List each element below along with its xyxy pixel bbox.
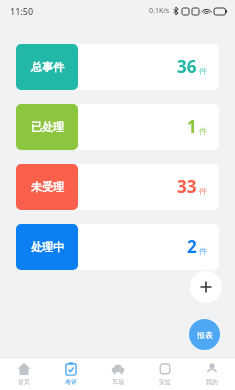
staticText: 已处理 — [31, 120, 64, 134]
staticText: 处理中 — [31, 240, 64, 254]
staticText: 我的 — [206, 378, 218, 386]
staticText: 件 — [199, 126, 207, 136]
button[interactable]: 车场 — [94, 358, 141, 390]
button[interactable] — [16, 104, 219, 150]
button[interactable] — [16, 164, 219, 210]
staticText: 1 — [187, 115, 197, 138]
staticText: 车场 — [112, 378, 124, 386]
staticText: 总事件 — [31, 60, 64, 74]
button[interactable] — [16, 44, 219, 90]
button[interactable]: 安监 — [141, 358, 188, 390]
button[interactable]: Add — [190, 271, 222, 303]
staticText: 报表 — [197, 330, 213, 340]
staticText: 11:50 — [10, 5, 34, 17]
staticText: 2 — [187, 235, 197, 258]
button[interactable]: 首页 — [0, 358, 47, 390]
staticText: 首页 — [18, 378, 30, 386]
staticText: 0.1K/s — [149, 6, 170, 16]
button[interactable]: 我的 — [188, 358, 235, 390]
button[interactable]: 报表 — [189, 319, 220, 350]
staticText: 件 — [199, 66, 207, 76]
staticText: 安监 — [159, 378, 171, 386]
button[interactable] — [16, 224, 219, 270]
staticText: 未受理 — [31, 180, 64, 194]
staticText: 36 — [177, 55, 197, 78]
staticText: 件 — [199, 246, 207, 256]
staticText: 件 — [199, 186, 207, 196]
staticText: 考评 — [65, 378, 77, 386]
button[interactable]: 考评 — [47, 358, 94, 390]
staticText: 33 — [177, 175, 197, 198]
